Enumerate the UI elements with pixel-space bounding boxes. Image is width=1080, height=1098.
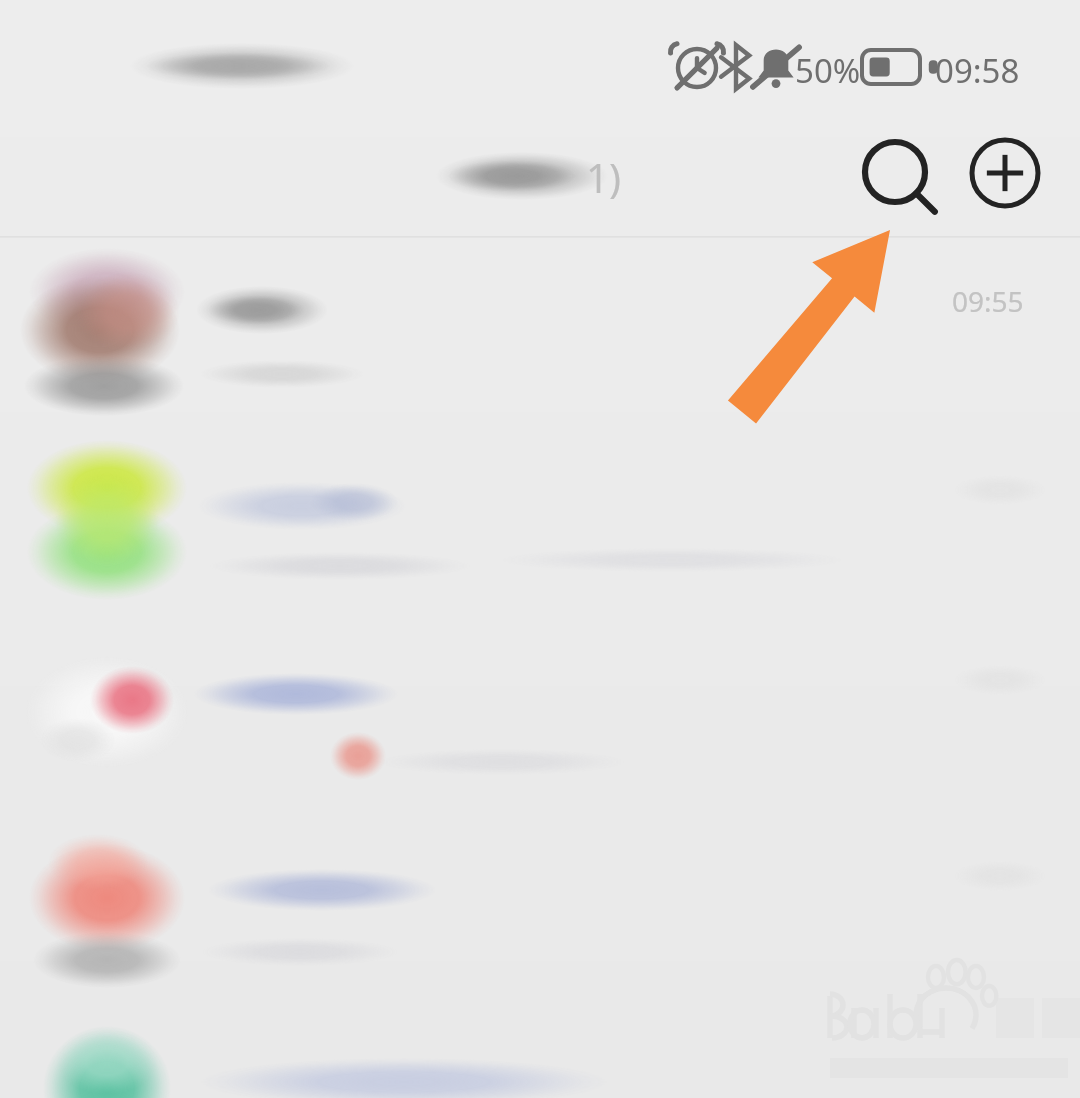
button[interactable] <box>0 810 1080 1000</box>
staticText: 1) <box>586 150 621 204</box>
button[interactable]: Add <box>962 130 1048 216</box>
button[interactable] <box>0 1000 1080 1098</box>
staticText: 50% <box>795 48 861 93</box>
button[interactable] <box>0 240 1080 430</box>
button[interactable] <box>0 430 1080 620</box>
button[interactable]: Search <box>852 130 938 216</box>
staticText: 09:55 <box>952 282 1024 320</box>
staticText: 09:58 <box>935 48 1020 93</box>
button[interactable] <box>0 620 1080 810</box>
